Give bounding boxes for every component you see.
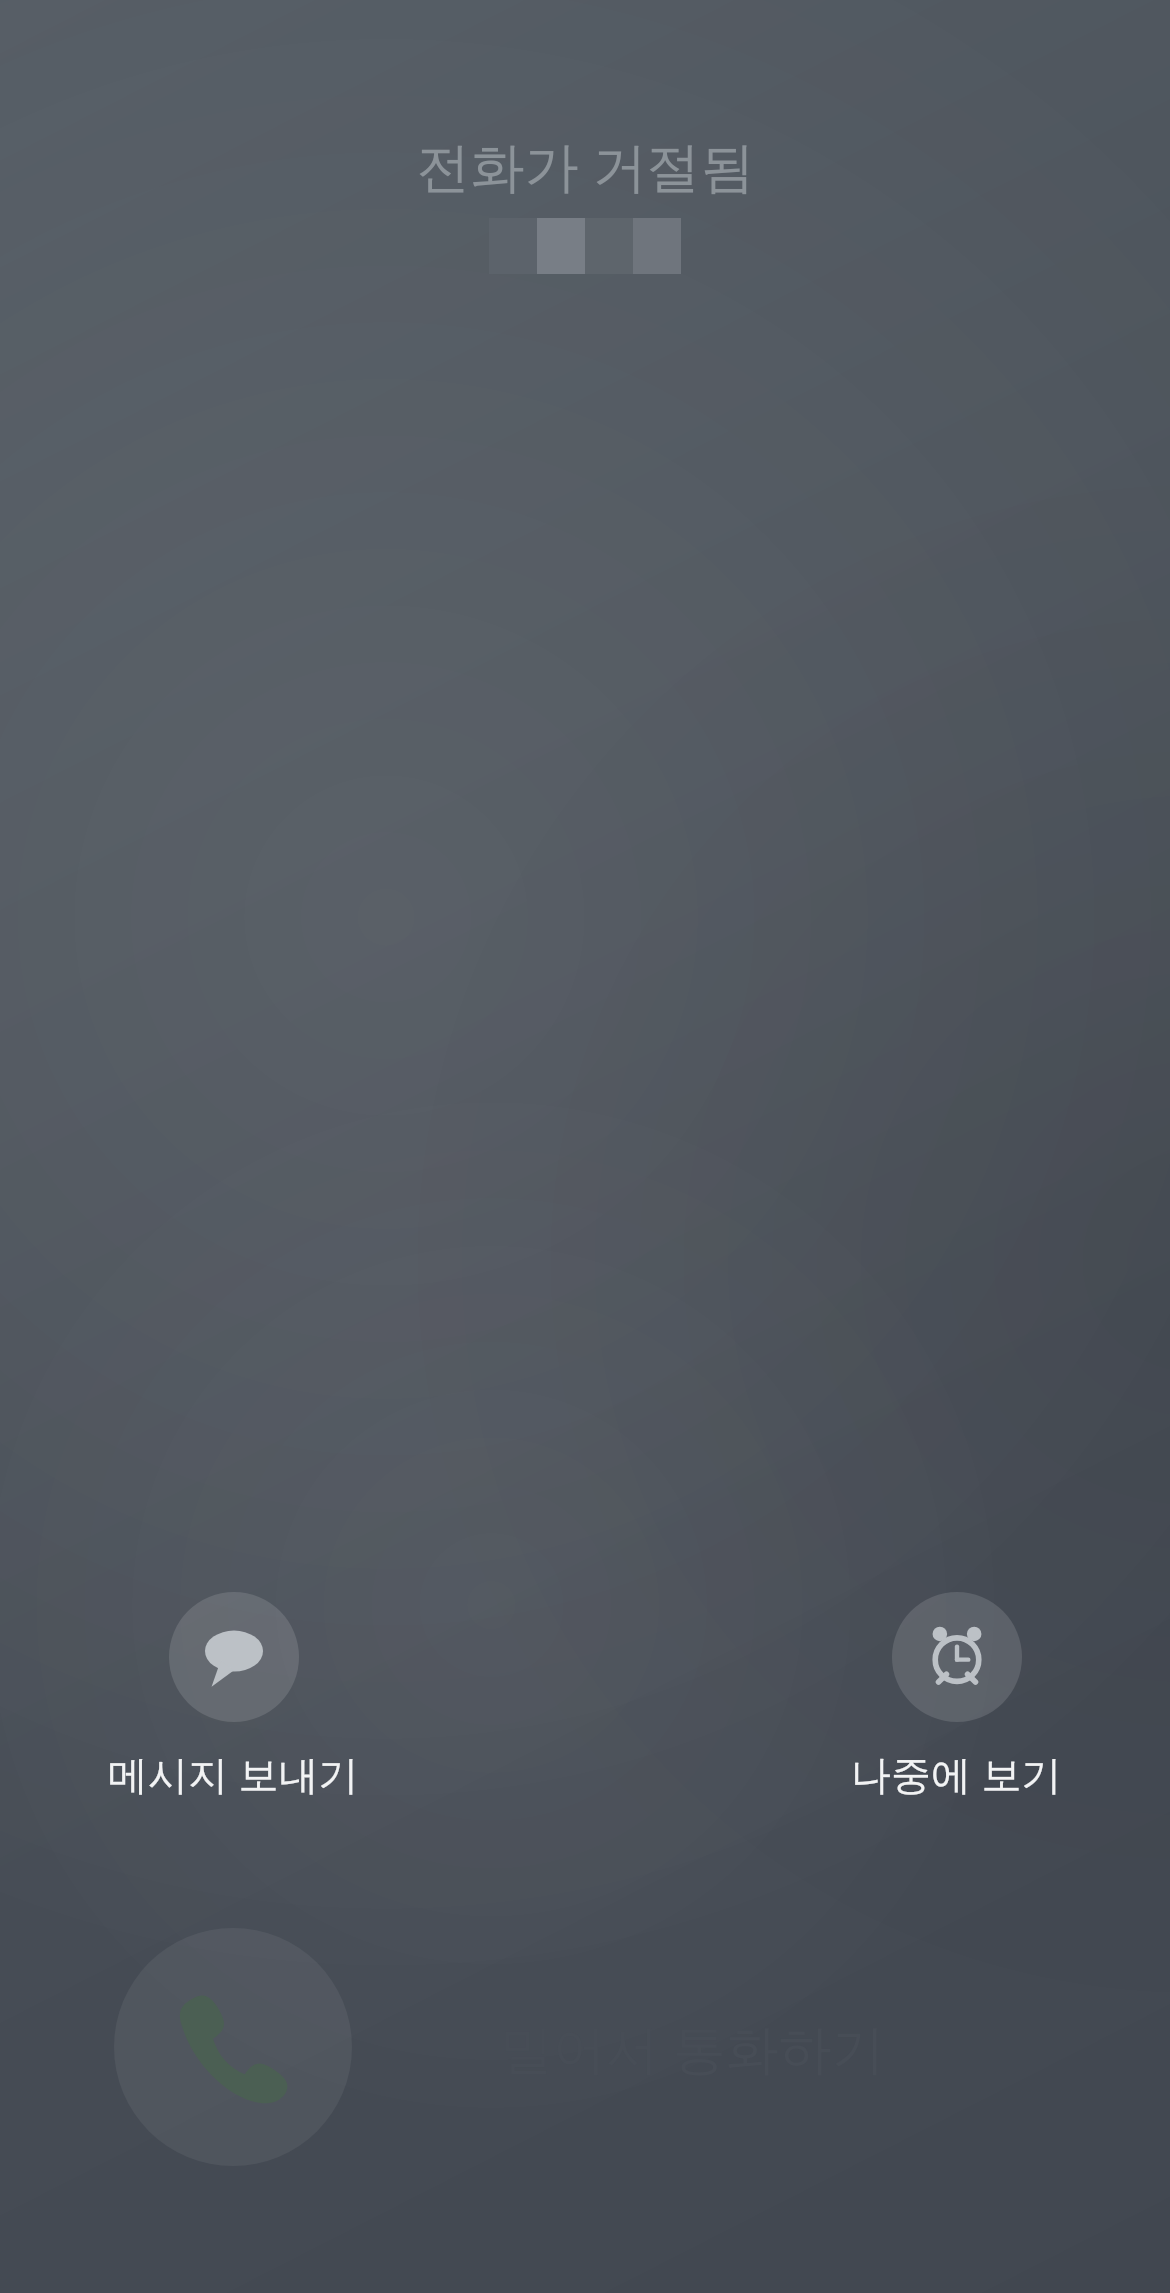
button[interactable]: 밀어서 통화하기 [114,1928,352,2166]
button[interactable]: 메시지 보내기 [100,1592,367,1801]
staticText: 나중에 보기 [851,1746,1062,1801]
staticText: 메시지 보내기 [108,1746,359,1801]
staticText: 전화가 거절됨 [416,128,755,202]
button[interactable]: 나중에 보기 [843,1592,1070,1801]
